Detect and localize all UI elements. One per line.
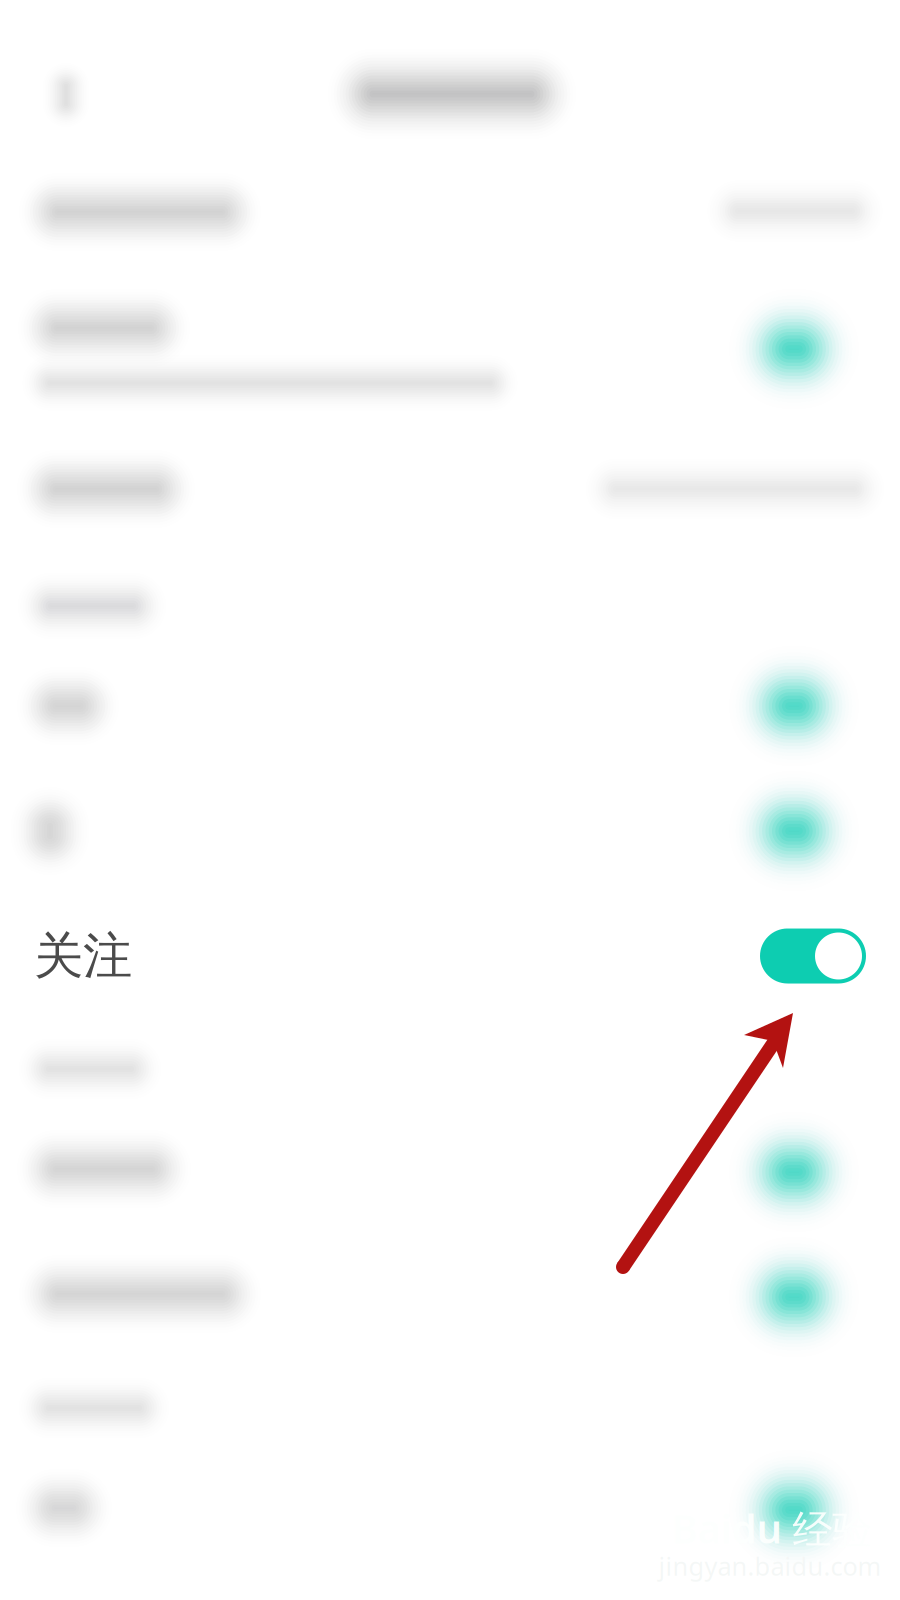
staticText: jingyan.baidu.com (658, 1549, 881, 1583)
staticText: Baidu 经验 (671, 1501, 872, 1555)
staticText: 关注 (34, 926, 132, 986)
button[interactable]: Back (6, 35, 126, 155)
button[interactable]: 关注 (0, 896, 900, 1016)
